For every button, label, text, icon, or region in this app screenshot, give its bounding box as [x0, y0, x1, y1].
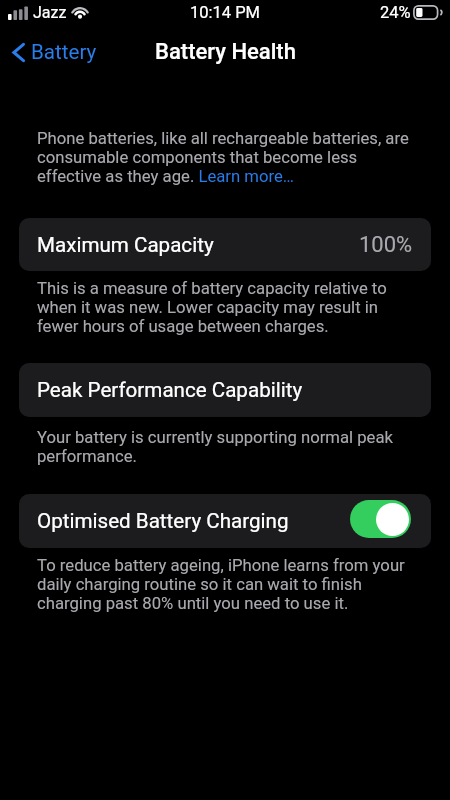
button[interactable]: Optimised Battery Charging — [19, 494, 431, 548]
staticText: 24% — [380, 3, 411, 22]
staticText: Jazz — [33, 3, 67, 22]
staticText: Peak Performance Capability — [37, 378, 303, 402]
staticText: Phone batteries, like all rechargeable b… — [37, 129, 409, 186]
staticText: Optimised Battery Charging — [37, 509, 289, 533]
staticText: To reduce battery ageing, iPhone learns … — [37, 556, 409, 613]
staticText: Battery — [31, 40, 97, 64]
button[interactable]: Maximum Capacity — [19, 218, 431, 271]
button[interactable]: Peak Performance Capability — [19, 363, 431, 417]
button[interactable]: Learn more — [196, 167, 296, 186]
staticText: 100% — [359, 232, 413, 258]
staticText: Maximum Capacity — [37, 233, 214, 257]
staticText: 10:14 PM — [190, 3, 260, 22]
staticText: This is a measure of battery capacity re… — [37, 279, 409, 336]
button[interactable]: Optimised Battery Charging toggle — [350, 500, 411, 538]
staticText: Your battery is currently supporting nor… — [37, 428, 409, 466]
staticText: Battery Health — [155, 39, 296, 65]
button[interactable]: Battery — [0, 34, 107, 70]
